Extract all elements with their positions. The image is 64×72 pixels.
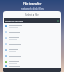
button[interactable]: Internal storage [4, 18, 60, 23]
staticText: network disk files [21, 7, 44, 11]
button[interactable] [3, 35, 61, 41]
staticText: Select a file [25, 13, 39, 17]
button[interactable] [3, 68, 61, 72]
button[interactable] [3, 23, 61, 29]
button[interactable] [3, 65, 61, 67]
button[interactable] [3, 47, 61, 53]
button[interactable] [3, 53, 61, 59]
button[interactable] [3, 41, 61, 47]
staticText: File transfer [23, 2, 42, 6]
staticText: Internal storage [5, 19, 24, 22]
button[interactable] [3, 59, 61, 65]
button[interactable] [3, 29, 61, 35]
